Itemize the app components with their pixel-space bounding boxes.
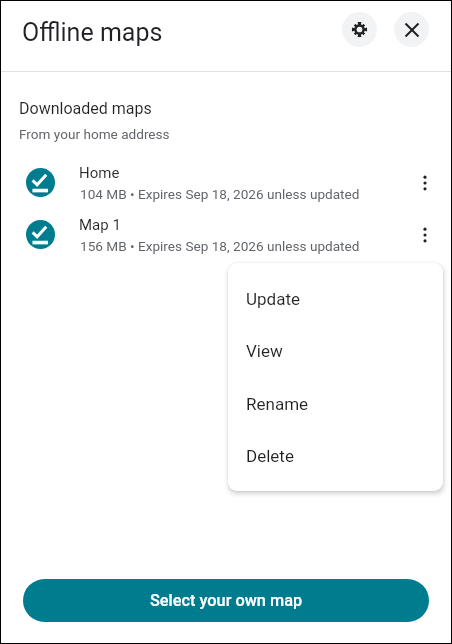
staticText: Update [246,289,300,309]
button[interactable]: More options [405,163,445,203]
staticText: Map 1 [79,216,121,234]
staticText: From your home address [19,126,170,142]
staticText: Home [79,164,120,182]
staticText: Rename [246,394,309,414]
staticText: Offline maps [22,18,163,47]
button[interactable]: Settings [342,12,377,47]
button[interactable]: More options [405,215,445,255]
staticText: Downloaded maps [19,99,152,118]
button[interactable]: View [228,324,443,377]
button[interactable]: Delete [228,429,443,482]
button[interactable]: Rename [228,377,443,430]
staticText: View [246,341,283,361]
staticText: 104 MB • Expires Sep 18, 2026 unless upd… [80,186,360,202]
button[interactable]: Update [228,272,443,325]
staticText: Delete [246,446,294,466]
staticText: 156 MB • Expires Sep 18, 2026 unless upd… [80,238,360,254]
button[interactable]: Home [0,156,452,209]
button[interactable]: Select your own map [23,579,429,622]
button[interactable]: Map 1 [0,208,452,261]
button[interactable]: Close [394,12,429,47]
staticText: Select your own map [150,591,303,610]
